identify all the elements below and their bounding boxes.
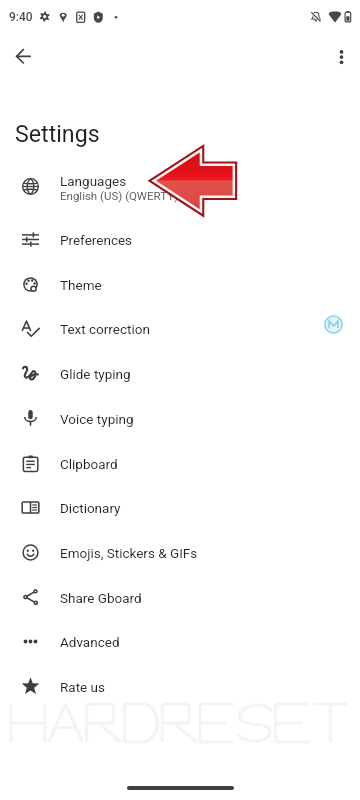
staticText: Dictionary (60, 500, 121, 516)
button[interactable]: Rate us (0, 664, 360, 709)
staticText: Clipboard (60, 456, 118, 472)
staticText: Voice typing (60, 411, 134, 427)
staticText: Rate us (60, 679, 105, 695)
button[interactable]: Languages (0, 160, 360, 213)
staticText: Advanced (60, 634, 120, 650)
staticText: Emojis, Stickers & GIFs (60, 545, 198, 561)
button[interactable]: Emojis, Stickers & GIFs (0, 530, 360, 575)
button[interactable]: Dictionary (0, 485, 360, 530)
button[interactable]: Back (0, 32, 47, 79)
staticText: Share Gboard (60, 590, 142, 606)
button[interactable]: Text correction (0, 306, 360, 351)
button[interactable]: Voice typing (0, 396, 360, 441)
staticText: Languages (60, 173, 127, 189)
staticText: Text correction (60, 321, 150, 337)
staticText: English (US) (QWERTY) (60, 189, 179, 202)
staticText: Glide typing (60, 366, 131, 382)
button[interactable]: Preferences (0, 217, 360, 262)
button[interactable]: Theme (0, 262, 360, 307)
staticText: Theme (60, 277, 102, 293)
button[interactable]: Clipboard (0, 441, 360, 486)
button[interactable]: More options (318, 33, 360, 80)
button[interactable]: Share Gboard (0, 575, 360, 620)
staticText: Settings (15, 120, 100, 147)
button[interactable]: Glide typing (0, 351, 360, 396)
staticText: 9:40 (9, 10, 33, 24)
staticText: Preferences (60, 232, 133, 248)
button[interactable]: Advanced (0, 619, 360, 664)
